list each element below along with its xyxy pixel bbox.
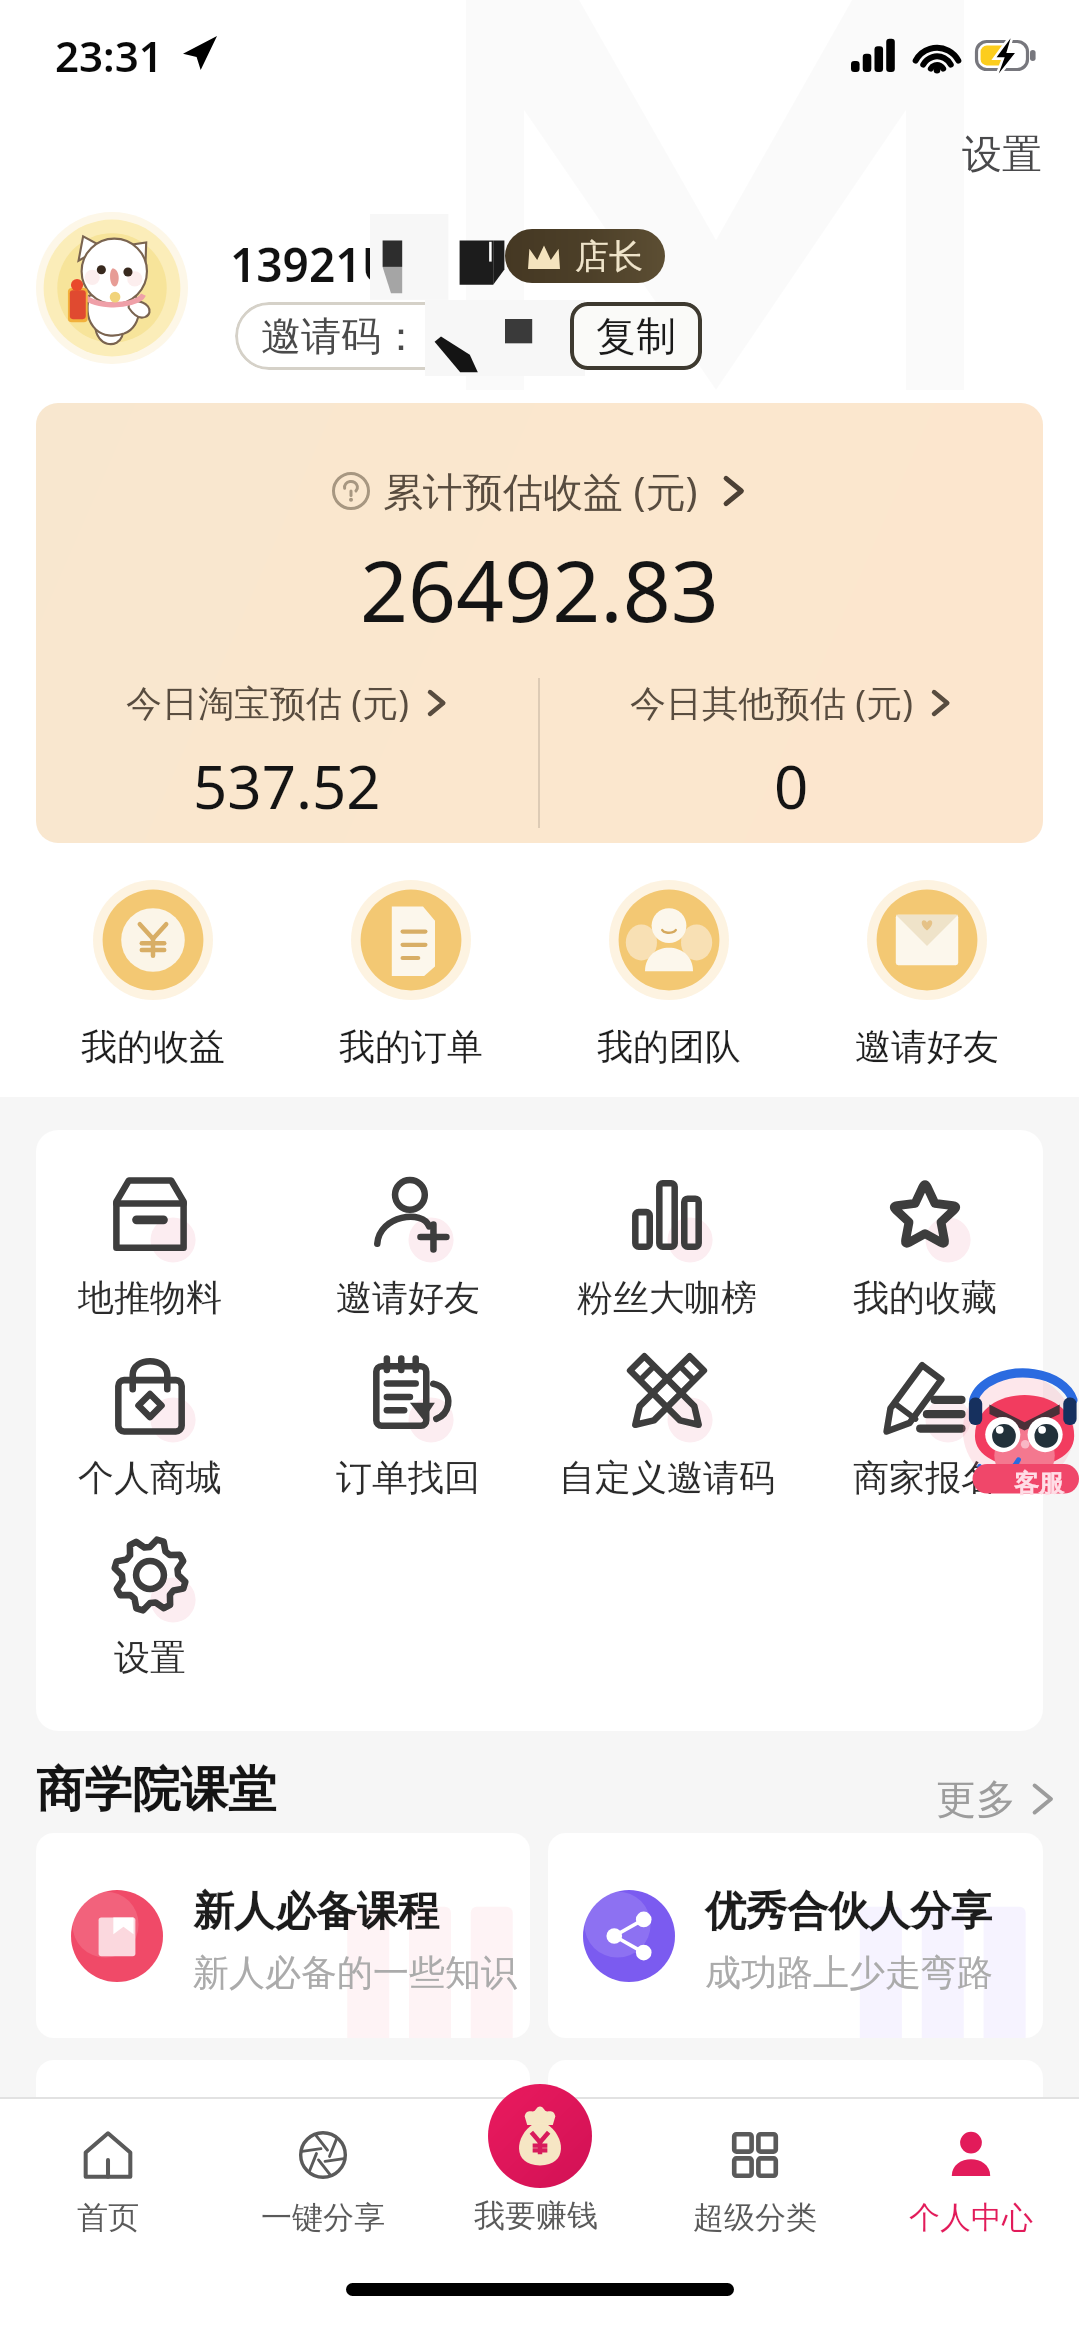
staticText: 商学院课堂 [36,1760,276,1820]
button[interactable]: 累计预估收益 (元) [36,403,1043,843]
staticText: 邀请好友 [855,1024,999,1069]
staticText: 更多 [936,1774,1016,1824]
button[interactable]: 设置 [36,1527,279,1680]
staticText: 今日其他预估 (元) [630,678,913,727]
staticText: 复制 [596,311,676,361]
button[interactable]: 地推物料 [36,1167,279,1320]
staticText: 个人中心 [909,2198,1033,2237]
staticText: 13921U [230,233,396,296]
button[interactable]: 店长 [505,229,665,283]
button[interactable]: 商家报名 [796,1347,1043,1500]
button[interactable]: 邀请好友 [279,1167,537,1320]
staticText: 地推物料 [78,1275,222,1320]
button[interactable]: 更多 [930,1768,1064,1830]
staticText: 超级分类 [693,2198,817,2237]
staticText: 店长 [575,235,643,278]
staticText: 23:31 [55,27,163,84]
staticText: 新人必备课程 [193,1886,439,1938]
staticText: 成功路上少走弯路 [705,1950,993,1995]
button[interactable]: 新人必备课程 [36,1833,530,2038]
staticText: 累计预估收益 (元) [383,463,698,518]
button[interactable]: 今日其他预估 (元) [540,678,1043,827]
staticText: 粉丝大咖榜 [577,1275,757,1320]
staticText: 537.52 [193,745,381,827]
button[interactable]: 个人商城 [36,1347,279,1500]
button[interactable]: 客服 [958,1362,1079,1499]
staticText: 首页 [77,2198,139,2237]
button[interactable]: 超级分类 [647,2124,863,2237]
button[interactable] [548,2060,1043,2265]
button[interactable]: 邀请好友 [798,880,1056,1069]
staticText: 0 [774,745,809,827]
button[interactable]: 个人中心 [863,2124,1079,2237]
button[interactable]: 自定义邀请码 [538,1347,796,1500]
staticText: 一键分享 [261,2198,385,2237]
staticText: 邀请码： [261,311,421,361]
staticText: 邀请好友 [336,1275,480,1320]
button[interactable]: 粉丝大咖榜 [538,1167,796,1320]
staticText: 我的收藏 [853,1275,997,1320]
button[interactable]: 邀请码： [235,302,565,370]
staticText: 我的订单 [339,1024,483,1069]
button[interactable]: 首页 [0,2124,215,2237]
staticText: 我要赚钱 [474,2196,598,2235]
button[interactable]: 我的订单 [282,880,540,1069]
staticText: 自定义邀请码 [559,1455,775,1500]
staticText: 商家报名 [853,1455,997,1500]
button[interactable]: 我的团队 [540,880,798,1069]
staticText: 个人商城 [78,1455,222,1500]
button[interactable]: 复制 [570,302,702,370]
button[interactable]: 我的收藏 [796,1167,1043,1320]
button[interactable]: 今日淘宝预估 (元) [36,678,538,827]
button[interactable]: 我要赚钱 [488,2084,592,2188]
button[interactable]: 优秀合伙人分享 [548,1833,1043,2038]
staticText: 订单找回 [336,1455,480,1500]
staticText: 设置 [114,1635,186,1680]
staticText: 客服 [1014,1468,1064,1499]
button[interactable]: 订单找回 [279,1347,537,1500]
button[interactable]: 一键分享 [215,2124,431,2237]
button[interactable]: 我的收益 [23,880,282,1069]
button[interactable] [36,2060,530,2265]
button[interactable]: 设置 [948,117,1056,191]
staticText: 优秀合伙人分享 [705,1886,992,1938]
staticText: 我的团队 [597,1024,741,1069]
staticText: 今日淘宝预估 (元) [126,678,409,727]
staticText: 26492.83 [360,532,719,646]
staticText: 我的收益 [81,1024,225,1069]
staticText: 新人必备的一些知识 [193,1950,517,1995]
staticText: 设置 [962,129,1042,179]
